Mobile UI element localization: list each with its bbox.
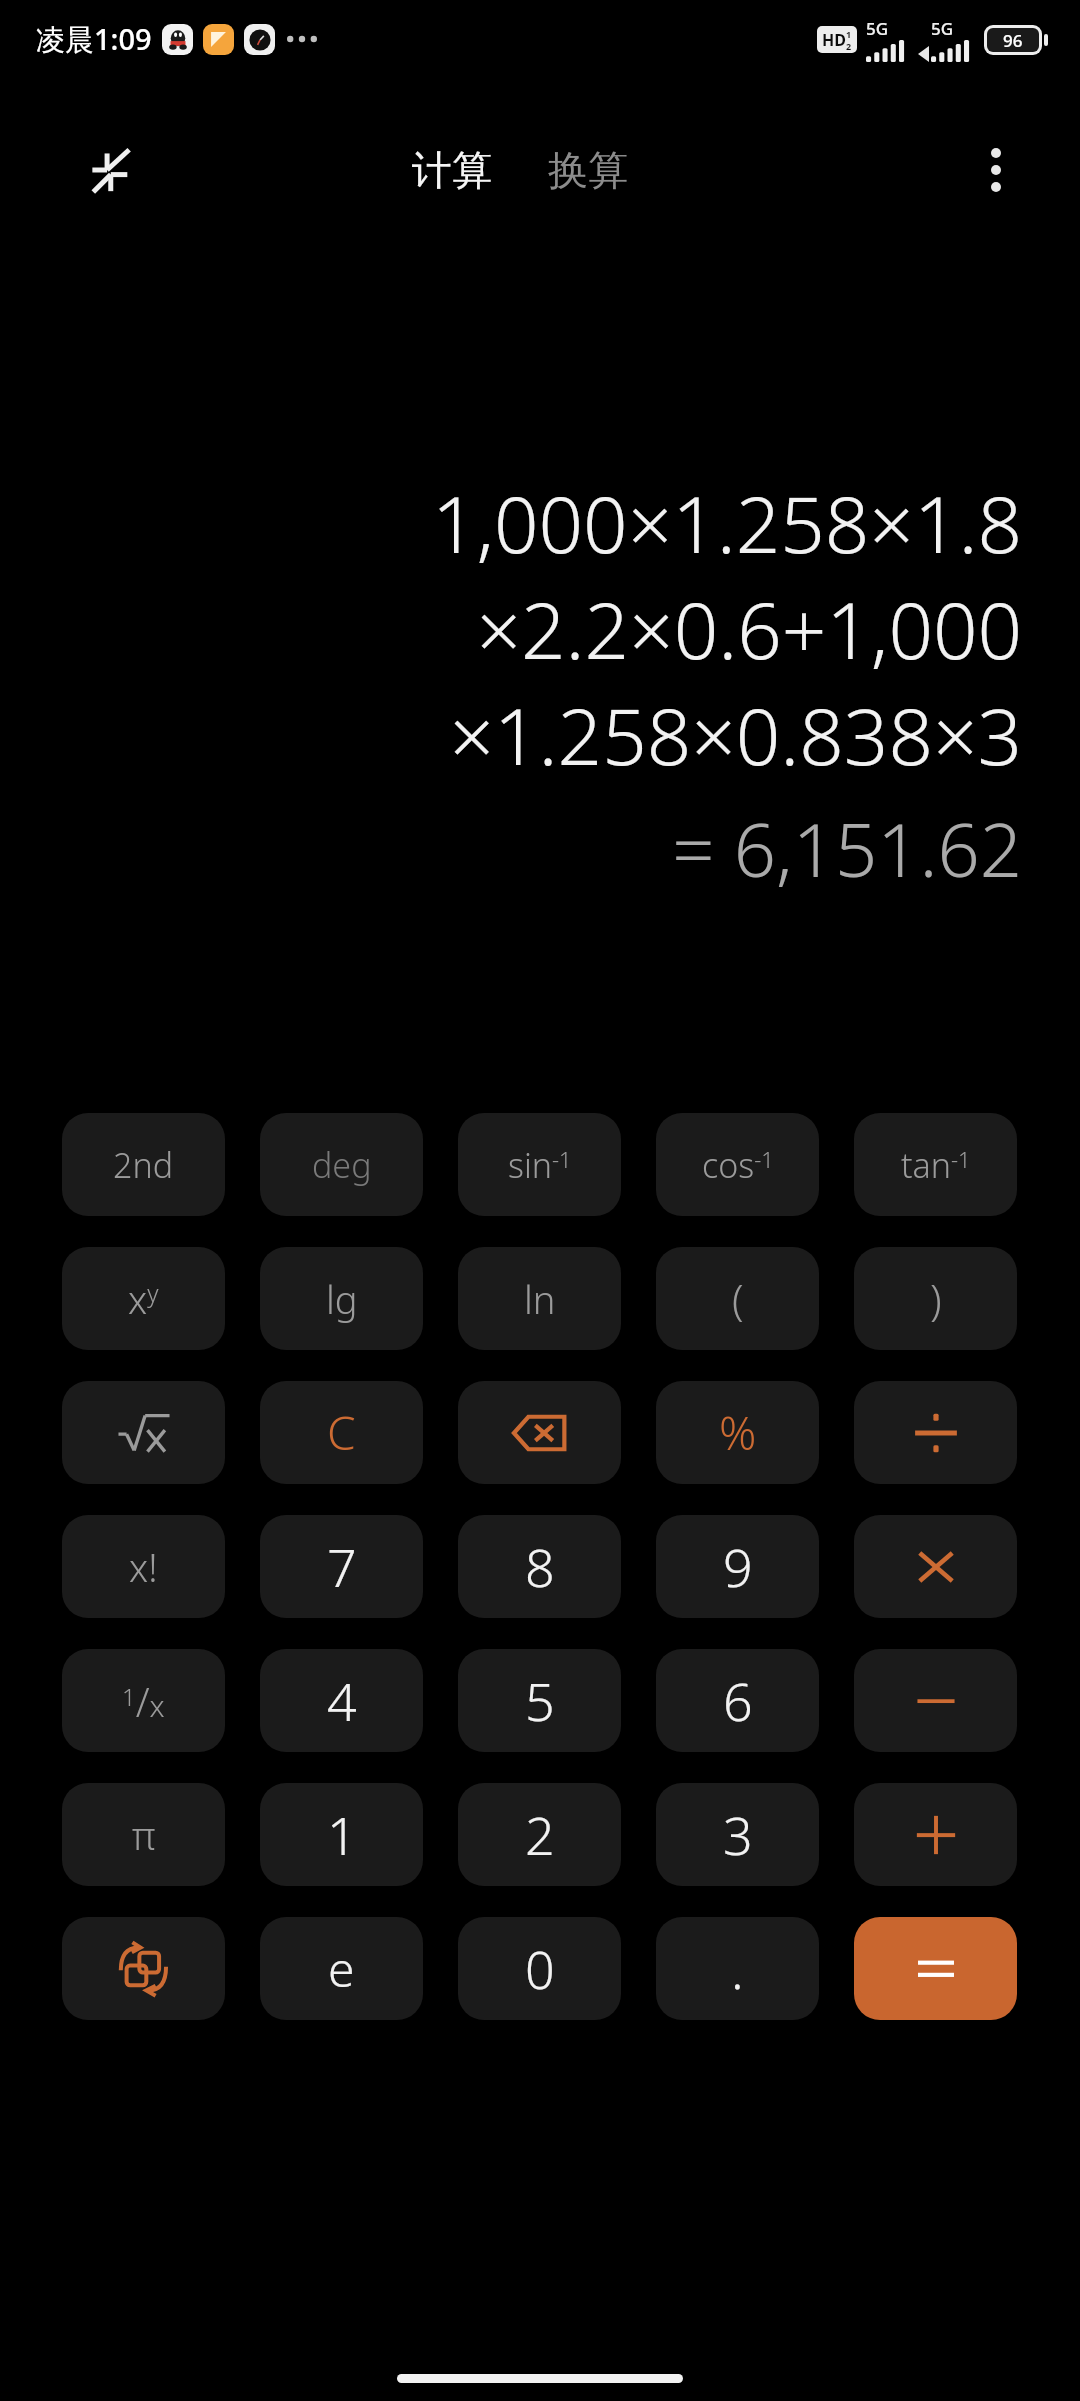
- staticText: ×2.2×0.6+1,000: [476, 576, 1022, 682]
- button[interactable]: %: [656, 1381, 819, 1484]
- staticText: cos-1: [702, 1142, 774, 1188]
- button[interactable]: ): [854, 1247, 1017, 1350]
- staticText: 9: [723, 1531, 753, 1602]
- staticText: %: [719, 1401, 757, 1464]
- staticText: ln: [524, 1273, 556, 1325]
- staticText: 换算: [548, 145, 628, 195]
- button[interactable]: (: [656, 1247, 819, 1350]
- staticText: 2: [525, 1799, 555, 1870]
- button[interactable]: .: [656, 1917, 819, 2020]
- staticText: sin-1: [508, 1142, 572, 1188]
- button[interactable]: 7: [260, 1515, 423, 1618]
- staticText: x!: [129, 1541, 158, 1593]
- button[interactable]: 1: [260, 1783, 423, 1886]
- staticText: 96: [1003, 29, 1023, 52]
- button[interactable]: Multiply: [854, 1515, 1017, 1618]
- staticText: 凌晨1:09: [36, 19, 152, 59]
- button[interactable]: C: [260, 1381, 423, 1484]
- staticText: ×1.258×0.838×3: [449, 682, 1022, 788]
- button[interactable]: 3: [656, 1783, 819, 1886]
- button[interactable]: 计算: [398, 139, 506, 201]
- staticText: 3: [723, 1799, 753, 1870]
- staticText: lg: [326, 1273, 358, 1325]
- button[interactable]: e: [260, 1917, 423, 2020]
- staticText: 8: [525, 1531, 555, 1602]
- button[interactable]: cos-1: [656, 1113, 819, 1216]
- button[interactable]: 9: [656, 1515, 819, 1618]
- button[interactable]: Backspace: [458, 1381, 621, 1484]
- button[interactable]: 8: [458, 1515, 621, 1618]
- staticText: 2: [846, 40, 852, 52]
- staticText: .: [731, 1933, 744, 2004]
- button[interactable]: 5: [458, 1649, 621, 1752]
- button[interactable]: π: [62, 1783, 225, 1886]
- staticText: xy: [128, 1273, 159, 1325]
- staticText: C: [327, 1401, 356, 1464]
- button[interactable]: 0: [458, 1917, 621, 2020]
- staticText: e: [328, 1936, 355, 2001]
- staticText: HD: [822, 29, 846, 51]
- button[interactable]: deg: [260, 1113, 423, 1216]
- button[interactable]: Divide: [854, 1381, 1017, 1484]
- button[interactable]: Minus: [854, 1649, 1017, 1752]
- staticText: 1/x: [122, 1674, 165, 1728]
- staticText: (: [732, 1270, 744, 1327]
- staticText: 1,000×1.258×1.8: [431, 470, 1022, 576]
- button[interactable]: Equals: [854, 1917, 1017, 2020]
- staticText: 4: [327, 1665, 357, 1736]
- staticText: 计算: [412, 145, 492, 195]
- staticText: 2nd: [113, 1142, 174, 1188]
- button[interactable]: 2: [458, 1783, 621, 1886]
- staticText: π: [132, 1809, 156, 1861]
- staticText: 6: [723, 1665, 753, 1736]
- button[interactable]: ln: [458, 1247, 621, 1350]
- staticText: 1: [327, 1799, 357, 1870]
- button[interactable]: sin-1: [458, 1113, 621, 1216]
- button[interactable]: Square root: [62, 1381, 225, 1484]
- staticText: 5G: [866, 17, 889, 40]
- button[interactable]: More options: [956, 130, 1036, 210]
- button[interactable]: xy: [62, 1247, 225, 1350]
- staticText: ): [930, 1270, 942, 1327]
- staticText: deg: [312, 1142, 372, 1188]
- button[interactable]: lg: [260, 1247, 423, 1350]
- staticText: = 6,151.62: [672, 798, 1022, 899]
- button[interactable]: 6: [656, 1649, 819, 1752]
- staticText: 5: [525, 1665, 555, 1736]
- button[interactable]: 1/x: [62, 1649, 225, 1752]
- button[interactable]: 换算: [534, 139, 642, 201]
- button[interactable]: Convert units: [62, 1917, 225, 2020]
- staticText: 7: [327, 1531, 357, 1602]
- staticText: tan-1: [901, 1142, 971, 1188]
- button[interactable]: tan-1: [854, 1113, 1017, 1216]
- button[interactable]: 2nd: [62, 1113, 225, 1216]
- staticText: 5G: [931, 17, 954, 40]
- button[interactable]: Collapse: [68, 130, 148, 210]
- staticText: 1: [846, 28, 852, 40]
- button[interactable]: x!: [62, 1515, 225, 1618]
- staticText: 0: [525, 1933, 555, 2004]
- button[interactable]: Plus: [854, 1783, 1017, 1886]
- button[interactable]: 4: [260, 1649, 423, 1752]
